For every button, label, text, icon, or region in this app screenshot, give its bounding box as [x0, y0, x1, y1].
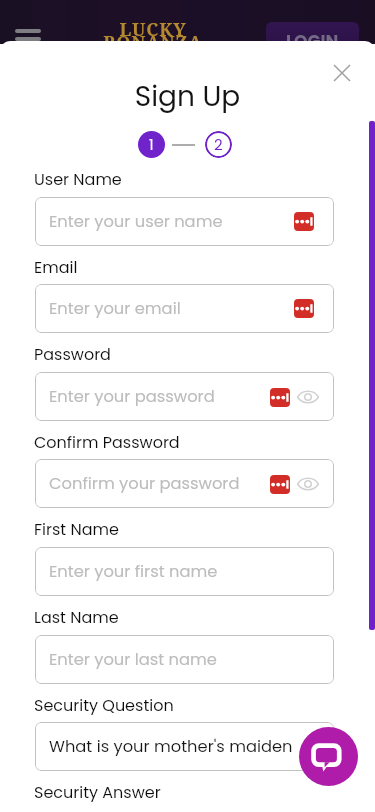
button[interactable]: Menu — [15, 29, 41, 41]
button[interactable]: 2 — [205, 131, 232, 158]
button[interactable]: Enter your user name — [35, 197, 334, 246]
button[interactable]: Show password — [297, 386, 319, 408]
staticText: Password — [34, 343, 111, 365]
button[interactable]: Enter your email — [35, 284, 334, 333]
button[interactable]: What is your mother's maiden name? — [35, 722, 334, 771]
staticText: Sign Up — [0, 77, 375, 116]
staticText: Enter your email — [49, 297, 181, 320]
button[interactable]: LastPass autofill — [294, 212, 314, 231]
button[interactable]: Enter your first name — [35, 547, 334, 596]
button[interactable]: Open chat — [299, 727, 358, 786]
staticText: First Name — [34, 518, 119, 540]
staticText: Security Question — [34, 694, 174, 716]
staticText: 2 — [214, 134, 223, 155]
staticText: Last Name — [34, 606, 119, 628]
staticText: User Name — [34, 168, 122, 190]
staticText: Security Answer — [34, 781, 161, 803]
button[interactable]: LastPass autofill — [294, 299, 314, 318]
button[interactable]: 1 — [138, 131, 165, 158]
button[interactable]: Enter your last name — [35, 635, 334, 684]
button[interactable]: LOGIN — [266, 22, 359, 62]
button[interactable]: Close — [329, 60, 355, 86]
staticText: Confirm your password — [49, 472, 240, 495]
staticText: LUCKY BONANZA — [98, 17, 208, 54]
staticText: LOGIN — [286, 29, 339, 53]
staticText: Email — [34, 256, 78, 278]
staticText: Enter your first name — [49, 560, 218, 583]
staticText: 1 — [149, 135, 154, 155]
staticText: Confirm Password — [34, 431, 180, 453]
button[interactable]: LastPass autofill — [270, 388, 290, 407]
staticText: Enter your user name — [49, 210, 223, 233]
staticText: What is your mother's maiden name? — [49, 735, 334, 758]
button[interactable]: Enter your password — [35, 372, 334, 421]
button[interactable]: Show password — [297, 473, 319, 495]
staticText: Enter your password — [49, 385, 215, 408]
button[interactable]: LastPass autofill — [270, 475, 290, 494]
button[interactable]: Confirm your password — [35, 459, 334, 508]
staticText: Enter your last name — [49, 648, 217, 671]
